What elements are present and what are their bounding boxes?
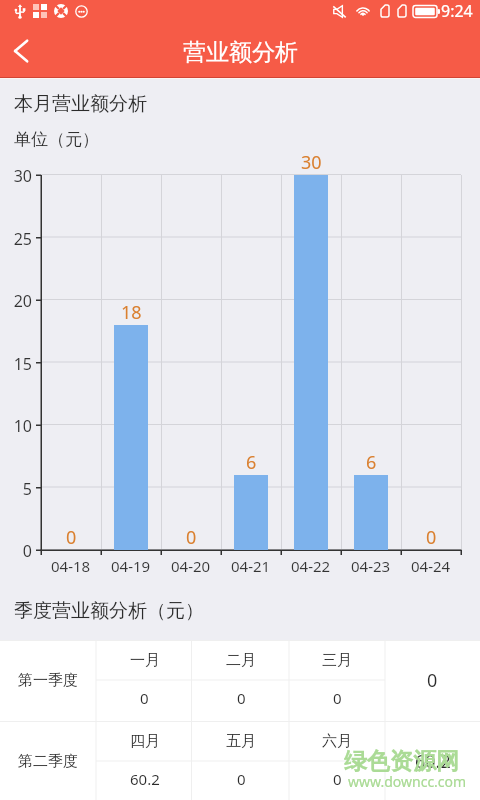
staticText: 第二季度	[18, 752, 78, 771]
button[interactable]: 第二季度	[0, 721, 480, 800]
staticText: 0	[427, 668, 438, 693]
staticText: 25	[6, 228, 32, 250]
staticText: 30	[301, 150, 322, 175]
staticText: 0	[140, 688, 149, 708]
staticText: 60.2	[415, 749, 451, 774]
staticText: 0	[333, 688, 342, 708]
staticText: 04-21	[231, 556, 271, 576]
staticText: 5	[6, 478, 32, 500]
staticText: 本月营业额分析	[14, 92, 147, 116]
staticText: 三月	[322, 651, 352, 670]
staticText: 04-19	[111, 556, 151, 576]
staticText: 18	[121, 300, 142, 325]
staticText: 六月	[322, 732, 352, 751]
staticText: 季度营业额分析（元）	[14, 599, 204, 623]
staticText: 9:24	[441, 0, 473, 22]
staticText: 60.2	[130, 769, 160, 789]
staticText: 0	[6, 540, 32, 562]
staticText: 0	[426, 525, 437, 550]
staticText: www.downcc.com	[348, 772, 467, 791]
staticText: 04-18	[51, 556, 91, 576]
staticText: 20	[6, 290, 32, 312]
staticText: 营业额分析	[183, 38, 298, 67]
button[interactable]: 第一季度	[0, 640, 480, 721]
staticText: 30	[6, 165, 32, 187]
staticText: 04-22	[291, 556, 331, 576]
staticText: 10	[6, 415, 32, 437]
staticText: 第一季度	[18, 671, 78, 690]
staticText: 6	[366, 450, 377, 475]
staticText: 四月	[130, 732, 160, 751]
staticText: 04-23	[351, 556, 391, 576]
staticText: 0	[237, 769, 246, 789]
staticText: 0	[333, 769, 342, 789]
staticText: 0	[66, 525, 77, 550]
staticText: 一月	[130, 651, 160, 670]
staticText: 绿色资源网	[344, 747, 459, 776]
staticText: 15	[6, 353, 32, 375]
staticText: 单位（元）	[14, 129, 99, 150]
staticText: 二月	[226, 651, 256, 670]
button[interactable]: Back	[0, 25, 42, 77]
staticText: 五月	[226, 732, 256, 751]
staticText: 04-24	[411, 556, 451, 576]
staticText: 04-20	[171, 556, 211, 576]
staticText: 6	[246, 450, 257, 475]
staticText: 0	[186, 525, 197, 550]
staticText: 0	[237, 688, 246, 708]
